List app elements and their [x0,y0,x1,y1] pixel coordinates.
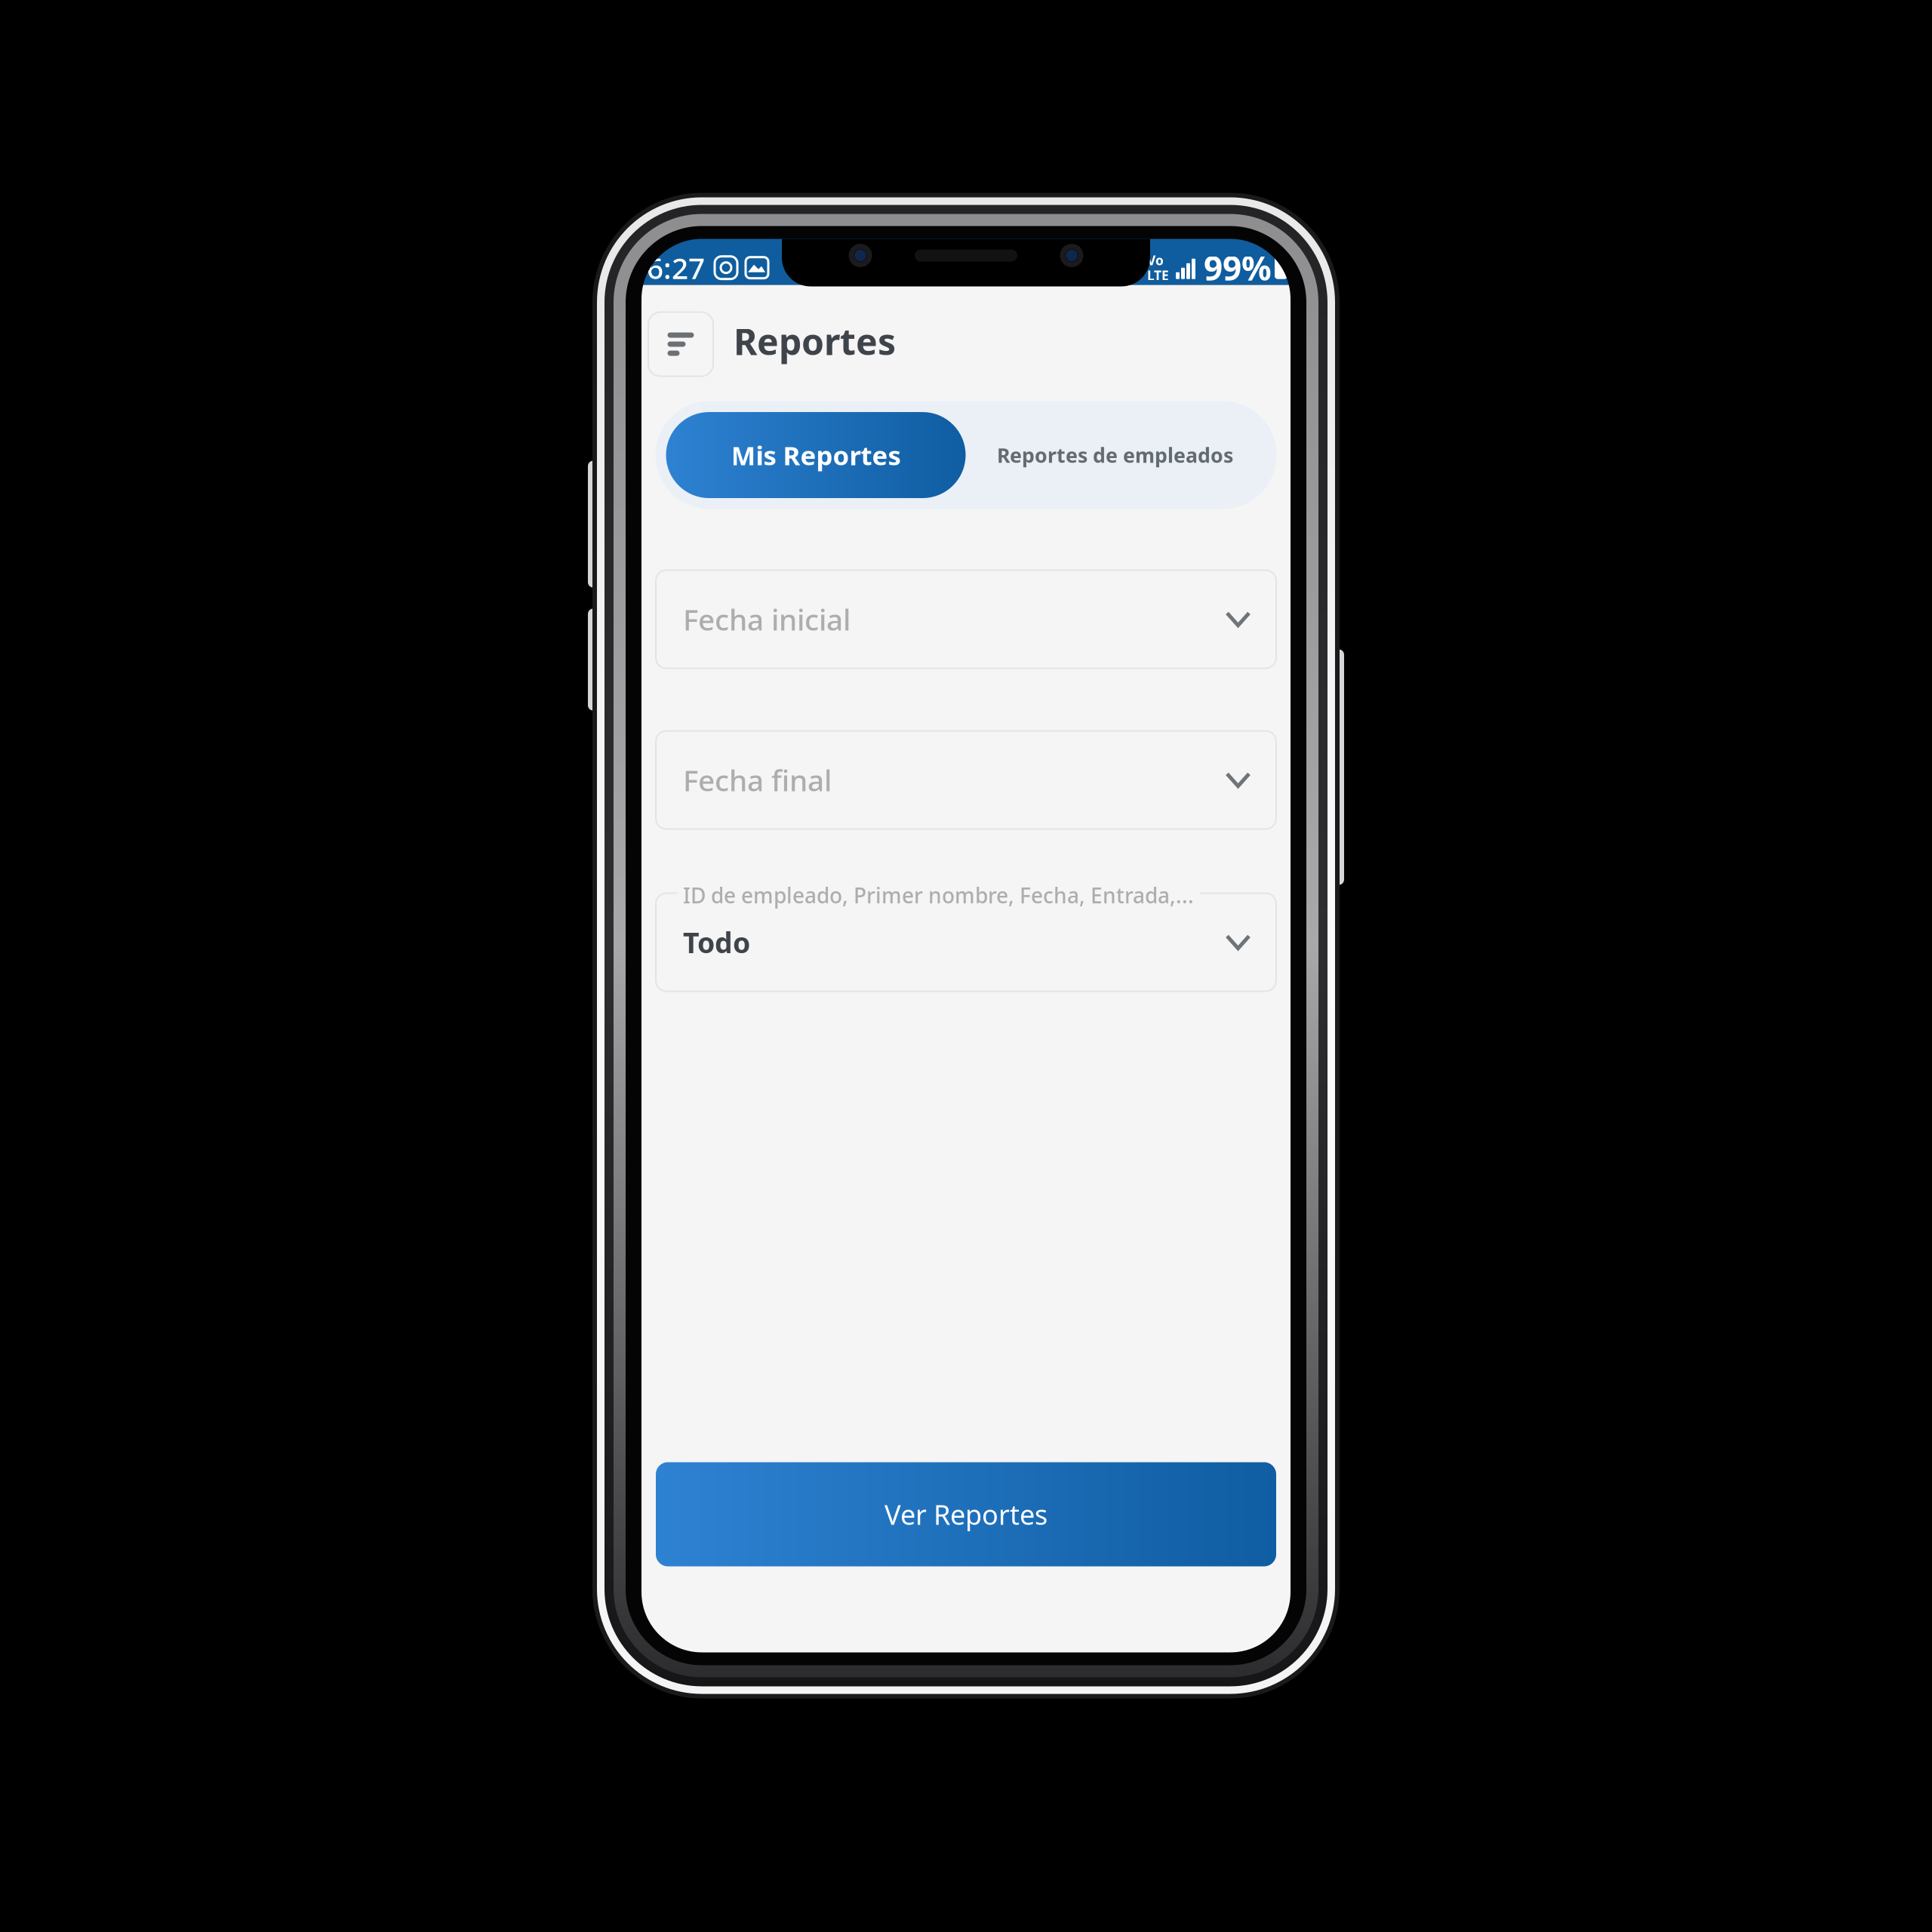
button[interactable]: Menu [648,312,713,376]
button[interactable]: Fecha final [656,731,1276,829]
staticText: ID de empleado, Primer nombre, Fecha, En… [683,881,1194,909]
staticText: Fecha inicial [683,600,851,639]
button[interactable]: Mis Reportes [666,412,966,498]
button[interactable]: Reportes de empleados [966,412,1264,498]
staticText: Reportes de empleados [997,442,1233,468]
button[interactable]: Ver Reportes [656,1462,1276,1566]
button[interactable]: Todo [656,893,1276,991]
button[interactable]: Fecha inicial [656,570,1276,668]
staticText: Vo [1147,251,1164,269]
staticText: 6:27 [647,248,705,287]
staticText: Todo [683,924,750,961]
staticText: Fecha final [683,761,832,799]
staticText: Mis Reportes [731,438,901,472]
staticText: LTE [1147,267,1169,284]
staticText: 99% [1204,246,1272,290]
staticText: Ver Reportes [884,1496,1048,1532]
staticText: Reportes [734,317,896,365]
